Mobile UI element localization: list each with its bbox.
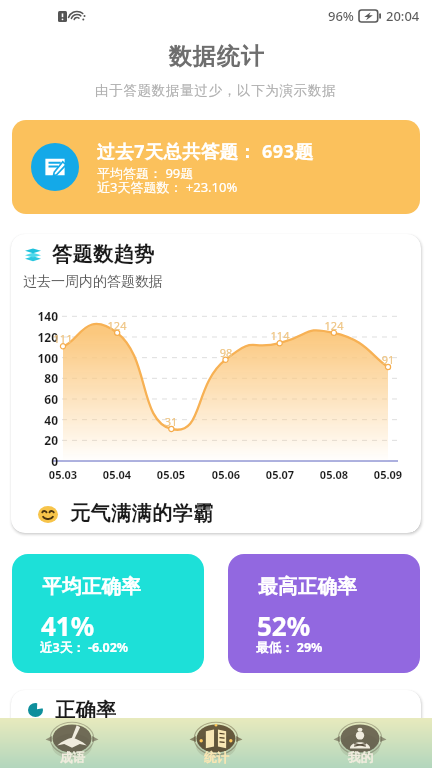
staticText: 20 — [11, 432, 58, 448]
staticText: 96% — [328, 7, 354, 25]
staticText: 05.03 — [38, 467, 88, 482]
staticText: 统计 — [204, 750, 229, 766]
button[interactable]: 最高正确率 — [228, 554, 420, 673]
staticText: 80 — [11, 370, 58, 386]
staticText: 120 — [11, 329, 58, 345]
staticText: 05.06 — [201, 467, 251, 482]
staticText: 过去一周内的答题数据 — [23, 273, 163, 291]
staticText: 20:04 — [386, 7, 420, 25]
staticText: 最低： 29% — [256, 639, 323, 656]
staticText: 05.07 — [255, 467, 305, 482]
staticText: 最高正确率 — [258, 574, 357, 599]
staticText: 近3天： -6.02% — [40, 639, 129, 656]
staticText: 元气满满的学霸 — [70, 501, 214, 526]
staticText: 60 — [11, 391, 58, 407]
staticText: 05.09 — [363, 467, 413, 482]
staticText: 41% — [41, 608, 95, 643]
staticText: 31 — [156, 414, 186, 429]
staticText: 98 — [211, 345, 241, 360]
staticText: 平均正确率 — [42, 574, 141, 599]
staticText: 124 — [102, 318, 132, 333]
button[interactable]: 我的 — [288, 718, 432, 768]
staticText: 过去7天总共答题： 693题 — [97, 139, 314, 164]
staticText: 124 — [319, 318, 349, 333]
staticText: 100 — [11, 350, 58, 366]
staticText: 52% — [257, 608, 311, 643]
staticText: 正确率 — [55, 698, 117, 723]
staticText: 05.08 — [309, 467, 359, 482]
staticText: 我的 — [348, 750, 373, 766]
staticText: 05.04 — [92, 467, 142, 482]
staticText: 40 — [11, 412, 58, 428]
staticText: 答题数趋势 — [52, 242, 155, 267]
button[interactable]: 统计 — [144, 718, 288, 768]
staticText: 114 — [265, 328, 295, 343]
staticText: 111 — [48, 331, 78, 346]
staticText: 数据统计 — [168, 42, 264, 71]
staticText: 成语 — [60, 750, 85, 766]
button[interactable]: 平均正确率 — [12, 554, 204, 673]
staticText: 平均答题： 99题 — [97, 164, 194, 182]
button[interactable]: 成语 — [0, 718, 144, 768]
staticText: 140 — [11, 308, 58, 324]
staticText: 05.05 — [146, 467, 196, 482]
staticText: 由于答题数据量过少，以下为演示数据 — [95, 82, 337, 99]
button[interactable]: 过去7天总共答题： 693题 — [12, 120, 420, 214]
staticText: 0 — [11, 453, 58, 469]
staticText: 91 — [373, 352, 403, 367]
staticText: 近3天答题数： +23.10% — [97, 178, 238, 196]
